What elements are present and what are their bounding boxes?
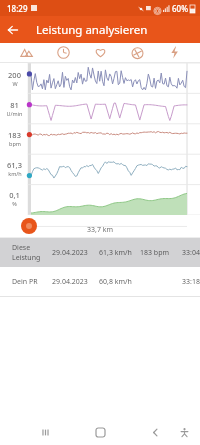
staticText: 81 — [10, 100, 19, 110]
button[interactable]: Trittfrequenz — [126, 43, 148, 62]
staticText: U/min — [6, 110, 23, 117]
button[interactable]: Herzfrequenz — [89, 43, 111, 62]
button[interactable]: Diese — [0, 238, 200, 267]
staticText: % — [12, 200, 17, 207]
staticText: Dein PR — [12, 277, 38, 287]
button[interactable]: Startpunkt — [21, 218, 37, 234]
button[interactable]: Startseite — [89, 421, 111, 443]
staticText: 18:29 — [7, 3, 28, 14]
staticText: Leistung — [12, 253, 41, 263]
button[interactable]: Leistung — [163, 43, 185, 62]
button[interactable]: Bedienungshilfen — [173, 421, 195, 443]
button[interactable]: Zurück — [0, 17, 26, 43]
staticText: 60% — [172, 3, 188, 14]
button[interactable]: Zurück — [144, 421, 166, 443]
staticText: Diese — [12, 243, 31, 253]
staticText: 33:18 — [182, 277, 200, 287]
staticText: 60,8 km/h — [99, 277, 132, 287]
staticText: 183 — [8, 130, 21, 140]
button[interactable]: Höhe — [15, 43, 37, 62]
staticText: 29.04.2023 — [52, 277, 88, 287]
staticText: 29.04.2023 — [52, 248, 88, 258]
staticText: 183 bpm — [140, 248, 169, 258]
staticText: 33,7 km — [87, 225, 113, 235]
staticText: km/h — [8, 170, 22, 177]
button[interactable]: Zeit — [52, 43, 74, 62]
staticText: W — [12, 80, 18, 87]
staticText: Leistung analysieren — [36, 22, 148, 38]
staticText: 61,3 km/h — [99, 248, 132, 258]
button[interactable]: Dein PR — [0, 267, 200, 296]
staticText: bpm — [9, 140, 21, 147]
staticText: 0,1 — [9, 190, 20, 200]
staticText: 61,3 — [7, 160, 22, 170]
staticText: 200 — [8, 70, 21, 80]
staticText: 33:04 — [182, 248, 200, 258]
button[interactable]: Letzte Apps — [34, 421, 56, 443]
